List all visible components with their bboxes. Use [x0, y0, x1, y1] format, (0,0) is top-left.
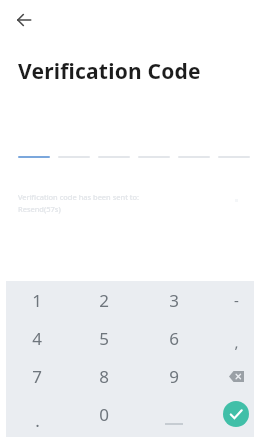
staticText: - [234, 290, 239, 310]
staticText: 6 [169, 327, 179, 350]
staticText: , [234, 332, 239, 352]
button[interactable]: 4 [11, 321, 63, 355]
button[interactable] [178, 140, 210, 158]
button[interactable]: Back [10, 6, 38, 34]
button[interactable]: , [210, 325, 260, 359]
button[interactable]: 3 [148, 283, 200, 317]
staticText: 3 [169, 289, 179, 312]
staticText: 0 [99, 403, 109, 426]
button[interactable] [138, 140, 170, 158]
button[interactable]: Space [152, 400, 196, 428]
button[interactable]: 7 [11, 359, 63, 393]
button[interactable]: Confirm [216, 394, 256, 434]
button[interactable]: 8 [78, 359, 130, 393]
button[interactable]: 6 [148, 321, 200, 355]
button[interactable] [98, 140, 130, 158]
staticText: 2 [99, 289, 109, 312]
staticText: . [35, 409, 40, 432]
button[interactable]: 9 [148, 359, 200, 393]
button[interactable]: 2 [78, 283, 130, 317]
button[interactable]: 5 [78, 321, 130, 355]
button[interactable] [58, 140, 90, 158]
button[interactable] [18, 140, 50, 158]
button[interactable]: 0 [78, 397, 130, 431]
staticText: 5 [99, 327, 109, 350]
staticText: 4 [32, 327, 42, 350]
staticText: 8 [99, 365, 109, 388]
staticText: 7 [32, 365, 42, 388]
staticText: 9 [169, 365, 179, 388]
button[interactable]: . [11, 403, 63, 437]
staticText: 1 [32, 289, 42, 312]
button[interactable]: - [210, 283, 260, 317]
staticText: Verification code has been sent to: [18, 192, 140, 202]
button[interactable] [218, 140, 250, 158]
staticText: Verification Code [18, 57, 201, 86]
button[interactable]: 1 [11, 283, 63, 317]
button[interactable]: Backspace [214, 362, 258, 390]
button[interactable]: Resend(57s) [18, 204, 61, 214]
